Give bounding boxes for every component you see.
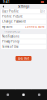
staticText: User Profile bbox=[2, 10, 19, 13]
staticText: 9:41 bbox=[3, 0, 10, 4]
button[interactable]: Notifications bbox=[1, 34, 46, 39]
button[interactable]: Terms of Use bbox=[1, 44, 46, 49]
staticText: My Store bbox=[2, 25, 13, 28]
button[interactable]: Log Out bbox=[15, 56, 31, 61]
staticText: PREFERENCES bbox=[3, 30, 19, 33]
button[interactable]: My Store bbox=[1, 24, 46, 29]
staticText: Change Password bbox=[2, 20, 26, 23]
staticText: Privacy Policy bbox=[2, 40, 19, 43]
button[interactable]: Privacy Policy bbox=[1, 39, 46, 44]
staticText: Notifications bbox=[2, 35, 19, 38]
button[interactable]: Profile Picture bbox=[1, 14, 46, 19]
button[interactable]: Home bbox=[0, 89, 16, 100]
staticText: Connect Store bbox=[25, 25, 45, 28]
button[interactable]: Back bbox=[1, 4, 6, 9]
staticText: Terms of Use bbox=[2, 45, 19, 48]
staticText: Profile Picture bbox=[2, 15, 23, 18]
button[interactable]: Change Password bbox=[1, 19, 46, 24]
button[interactable]: User Profile bbox=[1, 9, 46, 14]
staticText: Log Out bbox=[18, 57, 29, 60]
button[interactable]: Search bbox=[16, 89, 31, 100]
button[interactable]: Profile bbox=[31, 89, 47, 100]
staticText: Edit bbox=[40, 10, 45, 13]
staticText: Settings bbox=[18, 5, 29, 8]
